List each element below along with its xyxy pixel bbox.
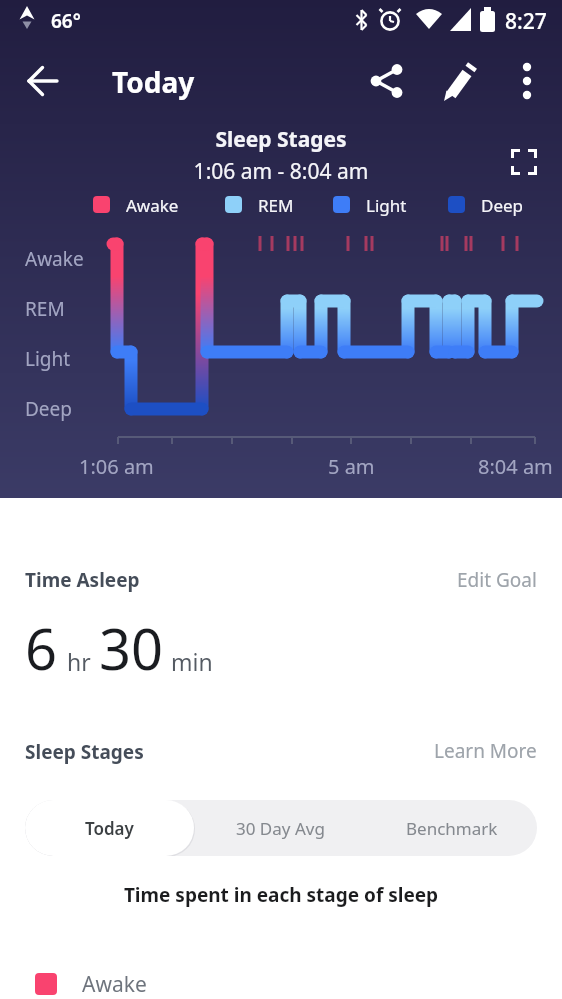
button[interactable] — [16, 53, 70, 107]
button[interactable] — [501, 55, 553, 107]
staticText: 30 Day Avg — [236, 817, 325, 840]
staticText: 66° — [51, 8, 81, 34]
staticText: 1:06 am - 8:04 am — [0, 157, 562, 186]
staticText: Sleep Stages — [25, 739, 144, 765]
staticText: Deep — [25, 396, 72, 422]
staticText: hr — [67, 646, 91, 677]
staticText: Time Asleep — [25, 567, 140, 593]
staticText: REM — [25, 296, 65, 322]
staticText: Awake — [82, 970, 147, 999]
staticText: Time spent in each stage of sleep — [0, 882, 562, 908]
staticText: Awake — [25, 246, 84, 272]
staticText: 5 am — [328, 453, 375, 480]
staticText: Light — [25, 346, 71, 372]
staticText: 8:04 am — [478, 453, 553, 480]
staticText: REM — [258, 194, 294, 217]
staticText: Light — [366, 194, 407, 217]
staticText: Deep — [481, 194, 524, 217]
button[interactable]: Today — [25, 800, 194, 856]
button[interactable] — [360, 55, 412, 107]
staticText: 8:27 — [505, 7, 547, 36]
staticText: Learn More — [434, 738, 537, 764]
staticText: Today — [85, 817, 134, 840]
button[interactable]: 30 Day Avg — [194, 800, 366, 856]
staticText: Edit Goal — [457, 567, 537, 593]
staticText: Sleep Stages — [0, 125, 562, 154]
button[interactable] — [434, 55, 486, 107]
button[interactable]: Awake — [0, 958, 562, 999]
staticText: Benchmark — [406, 817, 498, 840]
staticText: 1:06 am — [79, 453, 154, 480]
staticText: Awake — [126, 194, 179, 217]
button[interactable] — [504, 142, 544, 182]
button[interactable]: Benchmark — [366, 800, 537, 856]
staticText: 30 — [99, 610, 164, 686]
button[interactable]: Learn More — [420, 736, 540, 766]
button[interactable]: Edit Goal — [430, 565, 540, 595]
staticText: min — [171, 646, 213, 677]
staticText: Today — [112, 63, 195, 101]
staticText: 6 — [25, 610, 58, 686]
